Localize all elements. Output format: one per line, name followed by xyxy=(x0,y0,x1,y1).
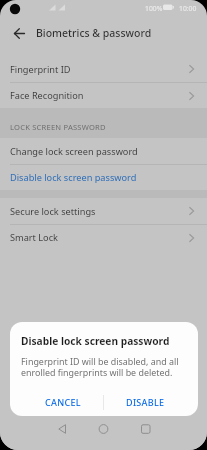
button[interactable]: Secure lock settings xyxy=(0,198,207,224)
staticText: 10:00 xyxy=(179,4,197,13)
staticText: LOCK SCREEN PASSWORD xyxy=(10,122,106,132)
button[interactable]: CANCEL xyxy=(22,388,103,416)
button[interactable] xyxy=(43,426,83,450)
button[interactable]: Face Recognition xyxy=(0,83,207,108)
button[interactable]: Disable lock screen password xyxy=(0,165,207,190)
button[interactable] xyxy=(125,426,165,450)
staticText: Fingerprint ID will be disabled, and all… xyxy=(21,355,186,379)
button[interactable]: DISABLE xyxy=(104,388,186,416)
staticText: Disable lock screen password xyxy=(21,334,170,348)
staticText: Smart Lock xyxy=(10,231,58,244)
button[interactable] xyxy=(14,28,25,39)
button[interactable]: Change lock screen password xyxy=(0,138,207,164)
staticText: Change lock screen password xyxy=(10,145,138,158)
button[interactable]: Fingerprint ID xyxy=(0,56,207,82)
staticText: 100% xyxy=(145,4,163,13)
button[interactable] xyxy=(83,426,125,450)
staticText: CANCEL xyxy=(45,396,81,408)
button[interactable]: Smart Lock xyxy=(0,225,207,250)
staticText: DISABLE xyxy=(126,396,165,408)
staticText: Secure lock settings xyxy=(10,205,96,218)
staticText: Biometrics & password xyxy=(36,26,152,40)
staticText: Fingerprint ID xyxy=(10,63,71,76)
staticText: Face Recognition xyxy=(10,89,84,102)
staticText: Disable lock screen password xyxy=(10,171,137,184)
